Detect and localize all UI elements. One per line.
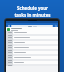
button[interactable] bbox=[6, 39, 58, 41]
staticText: tasks in minutes bbox=[14, 12, 51, 18]
staticText: Schedule your bbox=[17, 5, 48, 11]
button[interactable] bbox=[6, 41, 58, 44]
button[interactable] bbox=[6, 44, 58, 46]
button[interactable] bbox=[6, 27, 58, 31]
button[interactable] bbox=[6, 61, 58, 64]
button[interactable] bbox=[6, 36, 58, 39]
button[interactable] bbox=[6, 59, 58, 61]
button[interactable] bbox=[11, 25, 53, 27]
button[interactable] bbox=[6, 64, 58, 66]
button[interactable] bbox=[6, 34, 58, 36]
button[interactable] bbox=[6, 56, 58, 59]
button[interactable] bbox=[6, 31, 58, 34]
button[interactable] bbox=[6, 54, 58, 56]
button[interactable]: Menu bbox=[7, 24, 10, 27]
button[interactable] bbox=[6, 49, 58, 51]
button[interactable]: Search bbox=[54, 24, 57, 27]
button[interactable] bbox=[6, 51, 58, 54]
button[interactable] bbox=[6, 46, 58, 49]
